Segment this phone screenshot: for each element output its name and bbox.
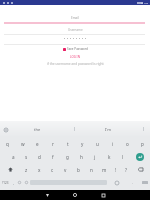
button[interactable]: z <box>20 163 33 176</box>
staticText: i <box>112 141 114 147</box>
staticText: n <box>90 167 93 173</box>
staticText: f <box>52 154 54 160</box>
staticText: j <box>94 154 96 160</box>
button[interactable]: q <box>0 137 15 150</box>
button[interactable]: u <box>90 137 105 150</box>
button[interactable]: Save Password <box>63 46 88 52</box>
staticText: Email <box>71 16 79 20</box>
button[interactable]: Language <box>23 176 30 189</box>
staticText: ! <box>115 167 117 173</box>
staticText: k <box>108 154 111 160</box>
staticText: q <box>6 141 9 147</box>
staticText: the <box>34 127 41 132</box>
button[interactable]: Settings <box>16 176 23 189</box>
button[interactable]: g <box>60 150 74 163</box>
button[interactable]: m <box>98 163 111 176</box>
button[interactable]: w <box>15 137 30 150</box>
button[interactable]: Recents <box>98 190 108 200</box>
staticText: w <box>21 141 25 147</box>
staticText: , <box>13 180 14 185</box>
button[interactable]: Shift <box>0 163 20 176</box>
button[interactable]: p <box>135 137 150 150</box>
staticText: b <box>77 167 80 173</box>
staticText: u <box>96 141 99 147</box>
button[interactable]: Username <box>62 28 89 32</box>
staticText: ? <box>125 167 127 173</box>
button[interactable]: Enter <box>130 150 150 163</box>
button[interactable]: Backspace <box>131 163 150 176</box>
staticText: o <box>126 141 129 147</box>
staticText: r <box>52 141 54 147</box>
button[interactable]: y <box>75 137 90 150</box>
button[interactable]: d <box>33 150 46 163</box>
staticText: g <box>66 154 69 160</box>
staticText: . <box>132 180 133 185</box>
button[interactable]: f <box>46 150 60 163</box>
button[interactable]: c <box>46 163 59 176</box>
button[interactable]: r <box>45 137 60 150</box>
button[interactable]: ! <box>111 163 121 176</box>
button[interactable] <box>63 38 87 39</box>
button[interactable]: I'm <box>99 124 117 134</box>
staticText: 100 <box>144 1 149 4</box>
button[interactable]: x <box>33 163 46 176</box>
staticText: y <box>81 141 84 147</box>
staticText: I'm <box>105 127 111 132</box>
staticText: Save Password <box>67 47 88 51</box>
button[interactable]: Voice input <box>1 125 10 134</box>
button[interactable]: t <box>60 137 75 150</box>
staticText: a <box>12 154 15 160</box>
button[interactable]: Comma <box>10 176 16 189</box>
button[interactable]: k <box>102 150 116 163</box>
staticText: m <box>102 167 107 173</box>
button[interactable]: Back <box>42 190 52 200</box>
staticText: v <box>64 167 67 173</box>
button[interactable]: h <box>74 150 88 163</box>
staticText: if the username and password is right <box>47 62 104 66</box>
button[interactable]: l <box>116 150 130 163</box>
staticText: c <box>51 167 54 173</box>
staticText: LOG IN <box>70 55 80 59</box>
button[interactable]: a <box>7 150 20 163</box>
staticText: x <box>38 167 41 173</box>
button[interactable]: the <box>28 124 46 134</box>
button[interactable]: LOG IN <box>66 54 84 60</box>
button[interactable]: Next <box>139 176 150 189</box>
staticText: z <box>25 167 28 173</box>
staticText: p <box>141 141 144 147</box>
staticText: Username <box>68 28 83 32</box>
button[interactable]: e <box>30 137 45 150</box>
button[interactable]: b <box>72 163 85 176</box>
staticText: e <box>36 141 39 147</box>
staticText: ?123 <box>2 181 9 185</box>
button[interactable]: i <box>105 137 120 150</box>
staticText: l <box>122 154 124 160</box>
staticText: h <box>80 154 83 160</box>
button[interactable]: j <box>88 150 102 163</box>
button[interactable]: Email <box>65 16 85 20</box>
staticText: t <box>67 141 69 147</box>
button[interactable]: ?123 <box>0 176 10 189</box>
button[interactable]: n <box>85 163 98 176</box>
staticText: s <box>25 154 28 160</box>
staticText: d <box>38 154 41 160</box>
button[interactable]: Emoji <box>107 176 126 189</box>
button[interactable]: s <box>20 150 33 163</box>
button[interactable]: v <box>59 163 72 176</box>
button[interactable]: o <box>120 137 135 150</box>
button[interactable]: ? <box>121 163 131 176</box>
button[interactable]: Home <box>70 190 80 200</box>
